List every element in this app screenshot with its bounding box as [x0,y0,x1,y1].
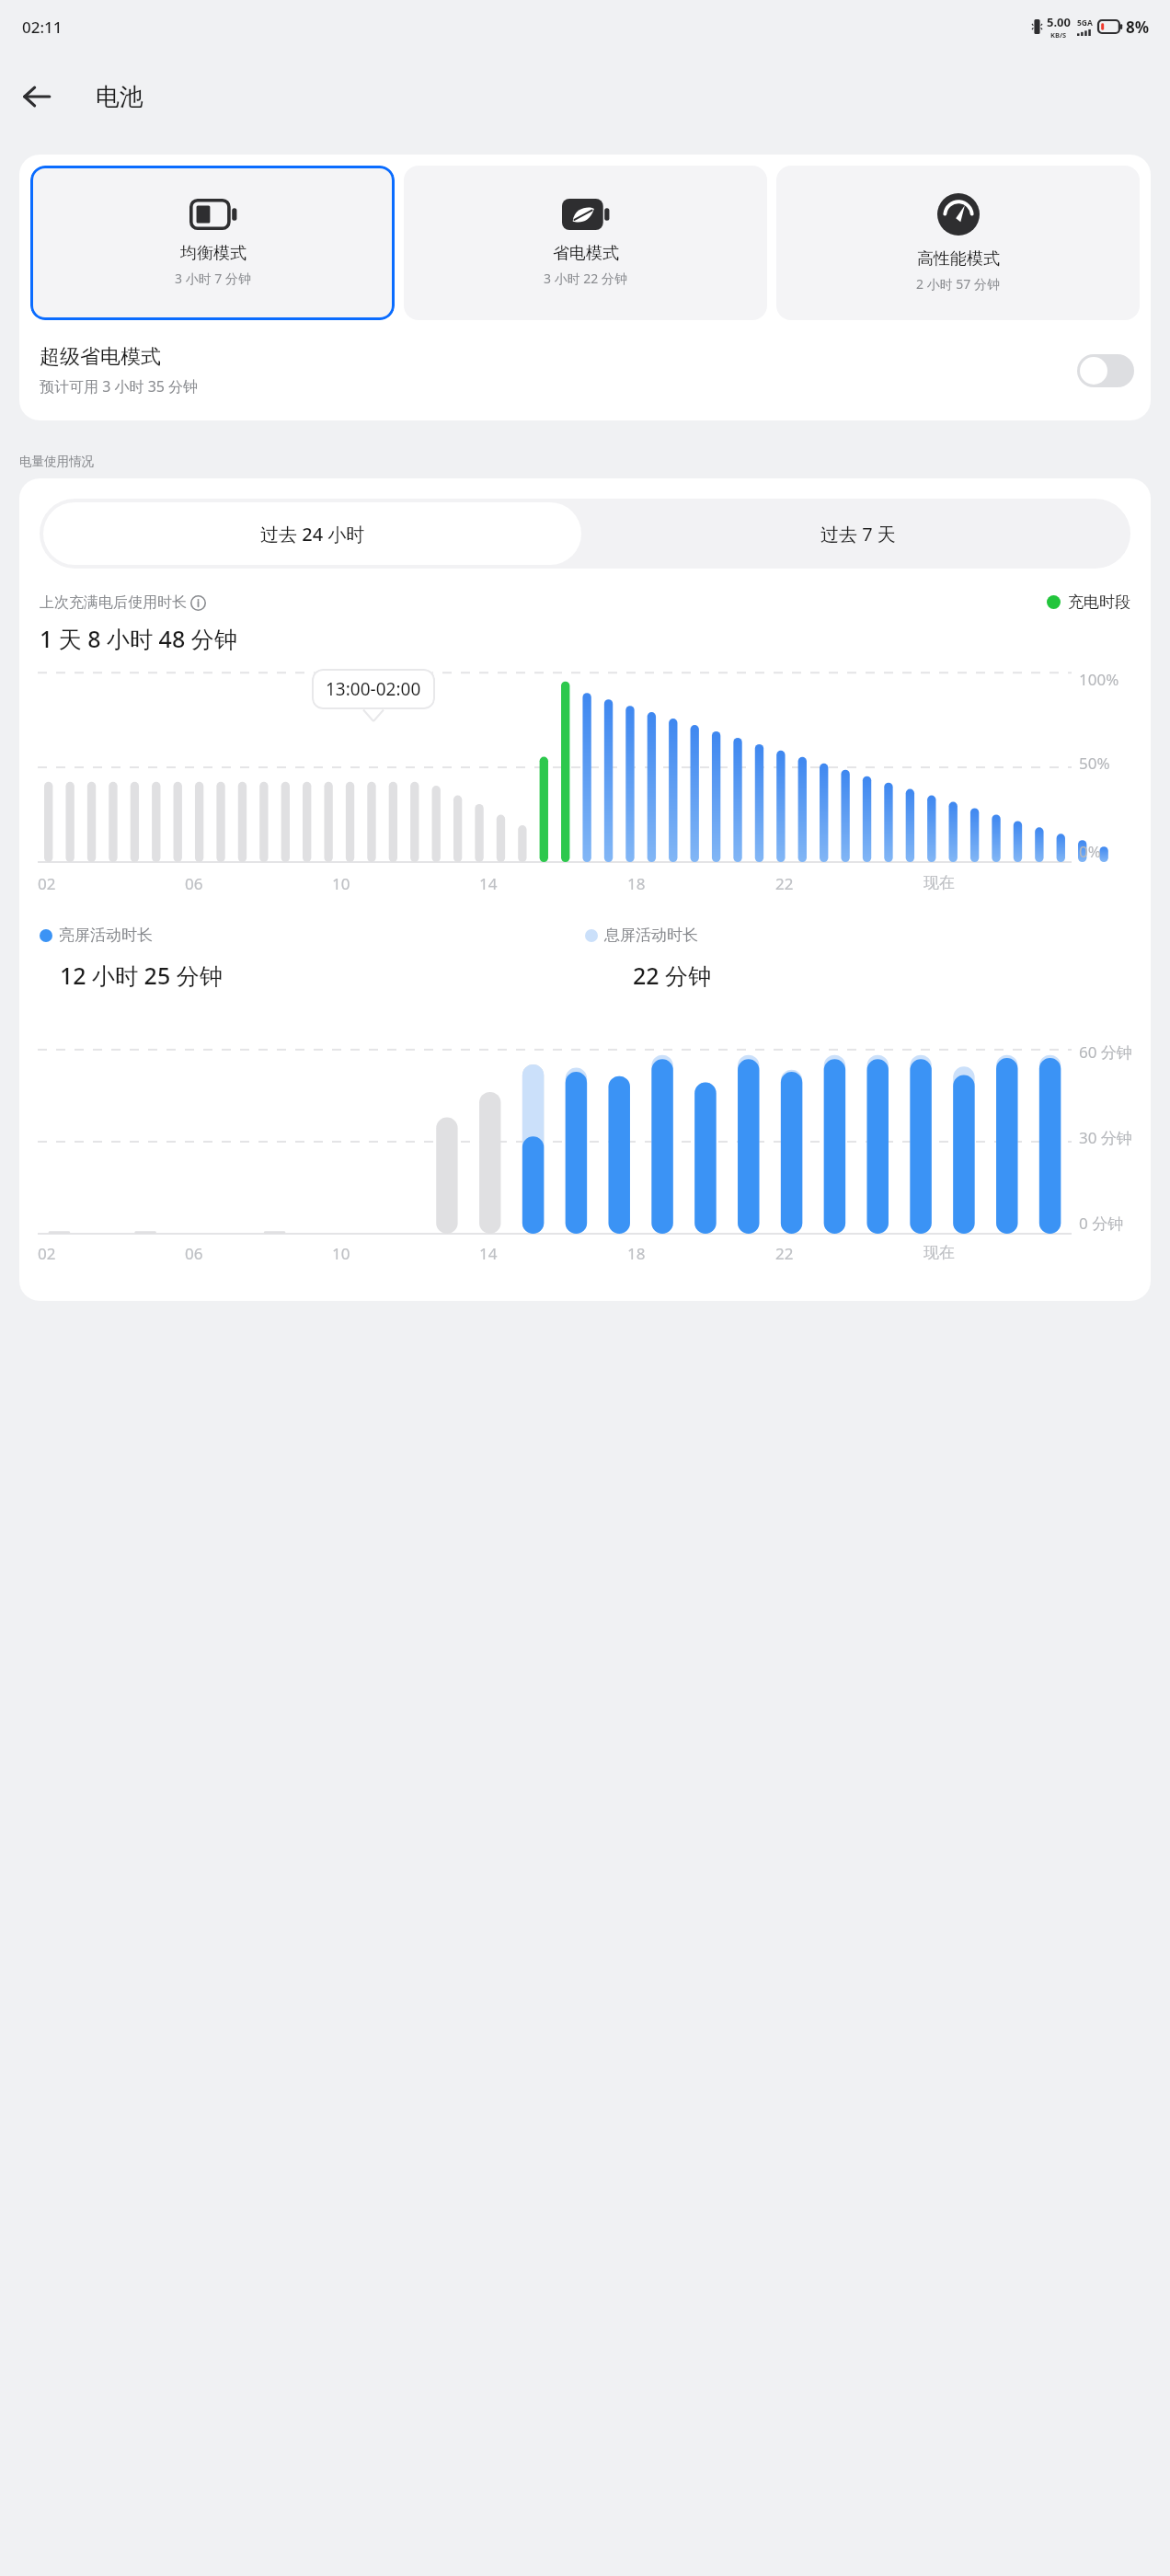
staticText: 50% [1079,753,1110,774]
staticText: 22 分钟 [633,960,712,991]
staticText: 3 小时 22 分钟 [544,270,627,287]
button[interactable]: 均衡模式 [30,166,395,320]
staticText: 10 [332,873,350,894]
staticText: 息屏活动时长 [604,926,698,945]
staticText: 亮屏活动时长 [59,926,153,945]
staticText: 充电时段 [1068,592,1130,612]
staticText: 电池 [96,82,143,112]
staticText: 现在 [923,873,955,892]
staticText: 18 [627,873,646,894]
staticText: 过去 24 小时 [260,522,365,546]
staticText: 过去 7 天 [820,522,896,546]
staticText: 2 小时 57 分钟 [916,275,1000,293]
staticText: 60 分钟 [1079,1041,1132,1063]
button[interactable]: 超级省电模式开关 [1077,354,1134,387]
staticText: 06 [185,1243,203,1264]
staticText: 02 [38,873,56,894]
staticText: 电量使用情况 [19,454,94,469]
staticText: 3 小时 7 分钟 [175,270,251,287]
staticText: 超级省电模式 [40,344,161,370]
staticText: 06 [185,873,203,894]
staticText: 14 [479,873,498,894]
staticText: 高性能模式 [917,248,1000,270]
staticText: 02 [38,1243,56,1264]
staticText: 省电模式 [553,243,619,264]
staticText: 22 [775,873,794,894]
staticText: 14 [479,1243,498,1264]
button[interactable]: 返回 [9,69,64,124]
staticText: 上次充满电后使用时长 [40,593,187,612]
staticText: 1 天 8 小时 48 分钟 [40,623,237,654]
staticText: 0 分钟 [1079,1213,1124,1234]
staticText: 30 分钟 [1079,1127,1132,1148]
button[interactable]: 过去 7 天 [585,499,1130,569]
staticText: 5GA [1077,17,1093,29]
button[interactable]: 过去 24 小时 [43,502,581,565]
staticText: 5.00 [1047,14,1071,30]
button[interactable]: 超级省电模式 [19,331,1151,420]
staticText: 22 [775,1243,794,1264]
staticText: 10 [332,1243,350,1264]
staticText: 02:11 [22,17,63,38]
staticText: 13:00-02:00 [326,677,421,701]
staticText: 现在 [923,1243,955,1262]
staticText: 8% [1126,17,1150,38]
staticText: KB/S [1050,30,1067,40]
button[interactable]: 高性能模式 [776,166,1140,320]
staticText: 100% [1079,669,1119,690]
staticText: 12 小时 25 分钟 [60,960,223,991]
staticText: 预计可用 3 小时 35 分钟 [40,376,199,397]
staticText: 18 [627,1243,646,1264]
staticText: 均衡模式 [180,243,247,264]
button[interactable]: 省电模式 [404,166,767,320]
staticText: 0% [1079,841,1101,862]
